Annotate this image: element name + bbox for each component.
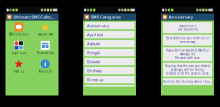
button[interactable]: Anniversary xyxy=(84,22,134,29)
staticText: Bewafa xyxy=(87,59,100,64)
staticText: Like a Butterfly xyxy=(177,28,197,31)
button[interactable]: Rate us xyxy=(5,59,32,73)
button[interactable]: Break up xyxy=(84,76,134,83)
button[interactable]: Birthday xyxy=(84,67,134,74)
staticText: April fool xyxy=(87,32,103,37)
button[interactable]: Bewafa xyxy=(84,58,134,65)
staticText: Blessed with Love xyxy=(175,56,200,60)
staticText: Birthday xyxy=(87,68,102,73)
button[interactable]: Here's to the feeling when I found love xyxy=(163,78,212,85)
button[interactable]: Favorite SMS xyxy=(32,22,58,36)
staticText: Favorite SMS xyxy=(38,33,53,36)
staticText: today & in all the years to come xyxy=(166,72,209,75)
button[interactable]: Happy Anniversary And May Your xyxy=(163,47,212,61)
staticText: Bengali xyxy=(87,50,100,55)
staticText: Best wishes to you both on ur xyxy=(166,36,209,40)
button[interactable]: Financial Calc xyxy=(32,40,58,55)
staticText: SMS Collection xyxy=(9,33,29,36)
button[interactable]: Logo Quiz xyxy=(5,40,32,55)
staticText: Here's to the feeling when I found love xyxy=(163,80,212,83)
staticText: About Us xyxy=(39,70,52,73)
button[interactable]: April fool xyxy=(84,31,134,38)
staticText: Anniversary xyxy=(180,40,195,44)
button[interactable]: SMS Collection xyxy=(5,22,32,36)
staticText: Financial Calc xyxy=(37,51,54,55)
button[interactable]: Happiness is xyxy=(163,22,212,33)
staticText: Anniversary xyxy=(169,14,193,20)
button[interactable]: Hoping that the two you shared xyxy=(163,63,212,77)
staticText: Hoping that the two you shared xyxy=(165,64,210,68)
staticText: years ago will be strong xyxy=(171,68,204,71)
staticText: Marriage Be xyxy=(179,52,195,56)
staticText: Break up xyxy=(87,77,103,82)
button[interactable]: Best wishes to you both on ur xyxy=(163,35,212,46)
button[interactable]: Attitude xyxy=(84,40,134,47)
staticText: Happy Anniversary And May Your xyxy=(166,49,209,52)
staticText: Anniversary xyxy=(87,23,109,28)
staticText: Rate us xyxy=(14,70,24,73)
staticText: SMS Categories xyxy=(91,14,121,20)
button[interactable]: Bengali xyxy=(84,49,134,56)
button[interactable]: About Us xyxy=(32,59,58,73)
staticText: Ultimate SMS Collection xyxy=(13,14,55,20)
staticText: Attitude xyxy=(87,41,100,46)
staticText: Logo Quiz xyxy=(12,51,26,55)
staticText: Happiness is xyxy=(179,24,196,27)
